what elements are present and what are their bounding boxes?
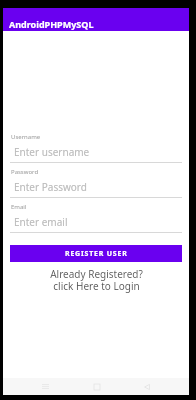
button[interactable]: Username — [10, 133, 182, 163]
button[interactable]: Already Registered? click Here to Login — [10, 267, 182, 293]
staticText: Enter username — [14, 145, 90, 159]
staticText: REGISTER USER — [65, 249, 128, 259]
staticText: Username — [11, 133, 41, 141]
button[interactable]: REGISTER USER — [10, 245, 182, 262]
button[interactable]: Password — [10, 168, 182, 198]
staticText: AndroidPHPMySQL — [9, 18, 94, 30]
button[interactable]: Recents — [37, 378, 54, 395]
staticText: Enter Password — [14, 180, 87, 194]
button[interactable]: Home — [88, 378, 105, 395]
staticText: Enter email — [14, 215, 68, 229]
staticText: Email — [11, 203, 27, 211]
staticText: Password — [11, 168, 39, 176]
button[interactable]: Email — [10, 203, 182, 233]
button[interactable]: Back — [138, 378, 155, 395]
staticText: Already Registered? click Here to Login — [50, 267, 143, 293]
